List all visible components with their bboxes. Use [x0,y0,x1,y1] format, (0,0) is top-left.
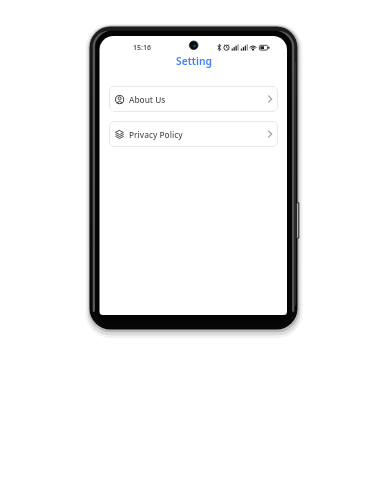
staticText: About Us [129,94,166,105]
button[interactable]: About Us [109,86,278,112]
staticText: Setting [176,54,212,68]
staticText: 15:16 [133,43,151,53]
button[interactable]: Privacy Policy [109,121,278,147]
staticText: Privacy Policy [129,129,183,140]
